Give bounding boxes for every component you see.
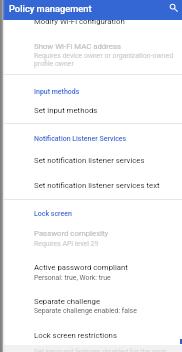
- button[interactable]: [4, 147, 182, 172]
- button[interactable]: [4, 290, 182, 318]
- staticText: Password complexity: [34, 229, 109, 238]
- staticText: Requires device owner or organization-ow…: [34, 52, 174, 68]
- staticText: Personal: true, Work: true: [34, 274, 111, 282]
- button[interactable]: [4, 98, 182, 123]
- staticText: Lock screen restrictions: [34, 331, 117, 340]
- staticText: Set keyguard features disabled for the w…: [34, 348, 174, 352]
- button[interactable]: [4, 256, 182, 284]
- button[interactable]: [4, 222, 182, 250]
- staticText: Separate challenge enabled: false: [34, 307, 137, 315]
- staticText: Set notification listener services text: [34, 181, 160, 190]
- button[interactable]: Search: [166, 0, 182, 16]
- staticText: Requires API level 29: [34, 240, 99, 248]
- staticText: Input methods: [34, 88, 80, 96]
- staticText: Lock screen: [34, 210, 72, 218]
- staticText: Set notification listener services: [34, 156, 145, 165]
- staticText: Show Wi-Fi MAC address: [34, 42, 121, 51]
- staticText: Active password compliant: [34, 263, 128, 272]
- staticText: Modify Wi-Fi configuration: [34, 17, 125, 26]
- staticText: Separate challenge: [34, 297, 101, 306]
- button[interactable]: [4, 324, 182, 352]
- staticText: Notification Listener Services: [34, 135, 127, 143]
- button[interactable]: [4, 172, 182, 197]
- button[interactable]: [4, 20, 182, 52]
- staticText: Policy management: [9, 3, 92, 14]
- staticText: Set input methods: [34, 106, 98, 115]
